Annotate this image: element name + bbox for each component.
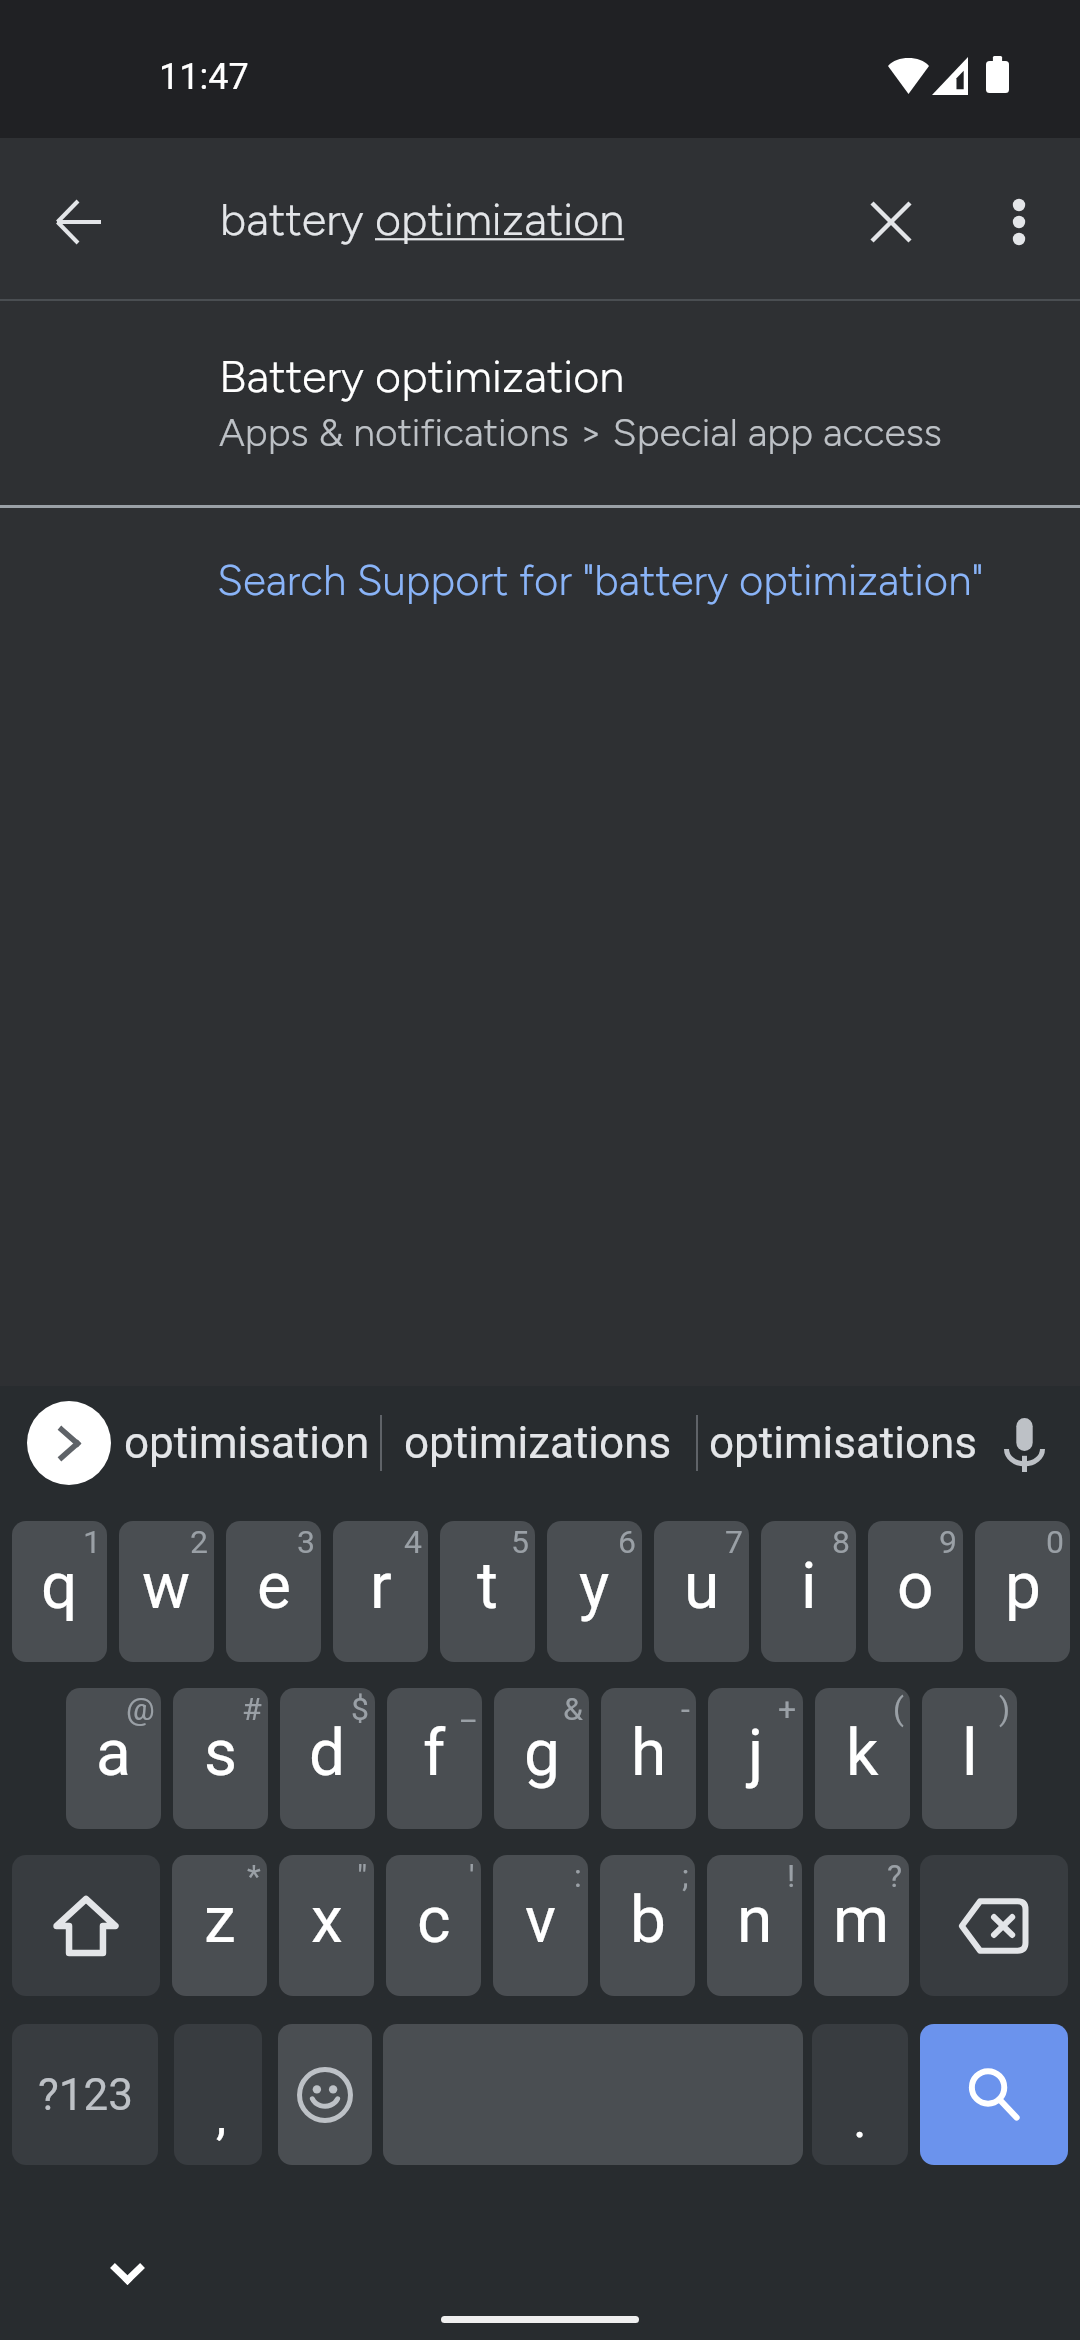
staticText: e (257, 1549, 291, 1624)
staticText: Apps & notifications > Special app acces… (219, 409, 942, 456)
button[interactable]: z (172, 1855, 267, 1996)
button[interactable]: d (280, 1688, 375, 1829)
button[interactable]: r (333, 1521, 428, 1662)
button[interactable]: x (279, 1855, 374, 1996)
staticText: 4 (404, 1523, 422, 1561)
staticText: @ (126, 1690, 155, 1728)
button[interactable]: c (386, 1855, 481, 1996)
staticText: 2 (190, 1523, 208, 1561)
button[interactable]: Battery optimization (0, 301, 1080, 505)
staticText: $ (351, 1690, 369, 1728)
staticText: n (737, 1883, 773, 1958)
button[interactable]: i (761, 1521, 856, 1662)
staticText: ' (469, 1857, 475, 1895)
button[interactable]: Emoji (278, 2024, 372, 2165)
staticText: optimizations (404, 1417, 672, 1469)
button[interactable]: optimizations (380, 1386, 696, 1500)
button[interactable]: l (922, 1688, 1017, 1829)
staticText: # (242, 1690, 262, 1728)
button[interactable]: Clear query (843, 174, 939, 270)
staticText: x (311, 1883, 343, 1958)
button[interactable]: o (868, 1521, 963, 1662)
button[interactable]: t (440, 1521, 535, 1662)
staticText: m (833, 1883, 890, 1958)
button[interactable]: More suggestions (27, 1401, 111, 1485)
staticText: Battery optimization (219, 349, 625, 403)
staticText: ! (787, 1857, 796, 1895)
staticText: i (801, 1549, 817, 1624)
button[interactable]: s (173, 1688, 268, 1829)
staticText: j (748, 1716, 764, 1791)
button[interactable]: b (600, 1855, 695, 1996)
staticText: " (357, 1857, 368, 1895)
button[interactable]: optimisation (103, 1386, 390, 1500)
staticText: ?123 (38, 2069, 133, 2121)
button[interactable]: . (812, 2024, 908, 2165)
button[interactable]: w (119, 1521, 214, 1662)
staticText: ? (887, 1857, 903, 1895)
staticText: * (247, 1857, 261, 1895)
button[interactable]: u (654, 1521, 749, 1662)
button[interactable]: g (494, 1688, 589, 1829)
staticText: 3 (297, 1523, 315, 1561)
button[interactable]: Search Support for "battery optimization… (0, 508, 1080, 653)
staticText: 0 (1046, 1523, 1064, 1561)
staticText: 8 (832, 1523, 850, 1561)
button[interactable]: e (226, 1521, 321, 1662)
staticText: o (897, 1549, 934, 1624)
button[interactable]: k (815, 1688, 910, 1829)
staticText: optimisation (124, 1417, 370, 1469)
staticText: optimisations (709, 1417, 978, 1469)
button[interactable]: More options (971, 174, 1067, 270)
staticText: r (370, 1549, 392, 1624)
staticText: - (681, 1690, 690, 1728)
button[interactable]: f (387, 1688, 482, 1829)
staticText: d (309, 1716, 346, 1791)
button[interactable]: Backspace (920, 1855, 1068, 1996)
staticText: : (574, 1857, 582, 1895)
staticText: ) (999, 1690, 1011, 1728)
staticText: t (477, 1549, 498, 1624)
staticText: h (631, 1716, 667, 1791)
staticText: c (417, 1883, 451, 1958)
button[interactable]: Back (30, 174, 126, 270)
staticText: _ (461, 1690, 476, 1728)
button[interactable]: j (708, 1688, 803, 1829)
button[interactable]: optimisations (702, 1386, 985, 1500)
button[interactable]: Hide keyboard (79, 2226, 175, 2322)
staticText: b (630, 1883, 666, 1958)
staticText: g (524, 1716, 560, 1791)
staticText: 9 (939, 1523, 957, 1561)
staticText: Search Support for "battery optimization… (217, 555, 984, 605)
staticText: 11:47 (159, 56, 249, 98)
staticText: k (846, 1716, 879, 1791)
staticText: a (96, 1716, 131, 1791)
staticText: battery (220, 192, 375, 246)
staticText: s (204, 1716, 238, 1791)
button[interactable]: a (66, 1688, 161, 1829)
staticText: p (1005, 1549, 1041, 1624)
button[interactable]: q (12, 1521, 107, 1662)
staticText: ( (893, 1690, 904, 1728)
staticText: & (563, 1690, 583, 1728)
button[interactable]: v (493, 1855, 588, 1996)
button[interactable]: h (601, 1688, 696, 1829)
staticText: w (142, 1549, 191, 1624)
button[interactable]: m (814, 1855, 909, 1996)
button[interactable]: , (174, 2024, 262, 2165)
button[interactable]: Shift (12, 1855, 160, 1996)
staticText: optimization (375, 192, 625, 246)
button[interactable]: n (707, 1855, 802, 1996)
staticText: y (579, 1549, 610, 1624)
button[interactable]: Voice input (976, 1397, 1072, 1493)
button[interactable]: ?123 (12, 2024, 158, 2165)
staticText: 7 (725, 1523, 743, 1561)
button[interactable]: y (547, 1521, 642, 1662)
staticText: , (216, 2086, 227, 2147)
staticText: l (962, 1716, 978, 1791)
button[interactable]: Search (920, 2024, 1068, 2165)
staticText: 6 (618, 1523, 636, 1561)
button[interactable]: p (975, 1521, 1070, 1662)
staticText: ; (682, 1857, 689, 1895)
